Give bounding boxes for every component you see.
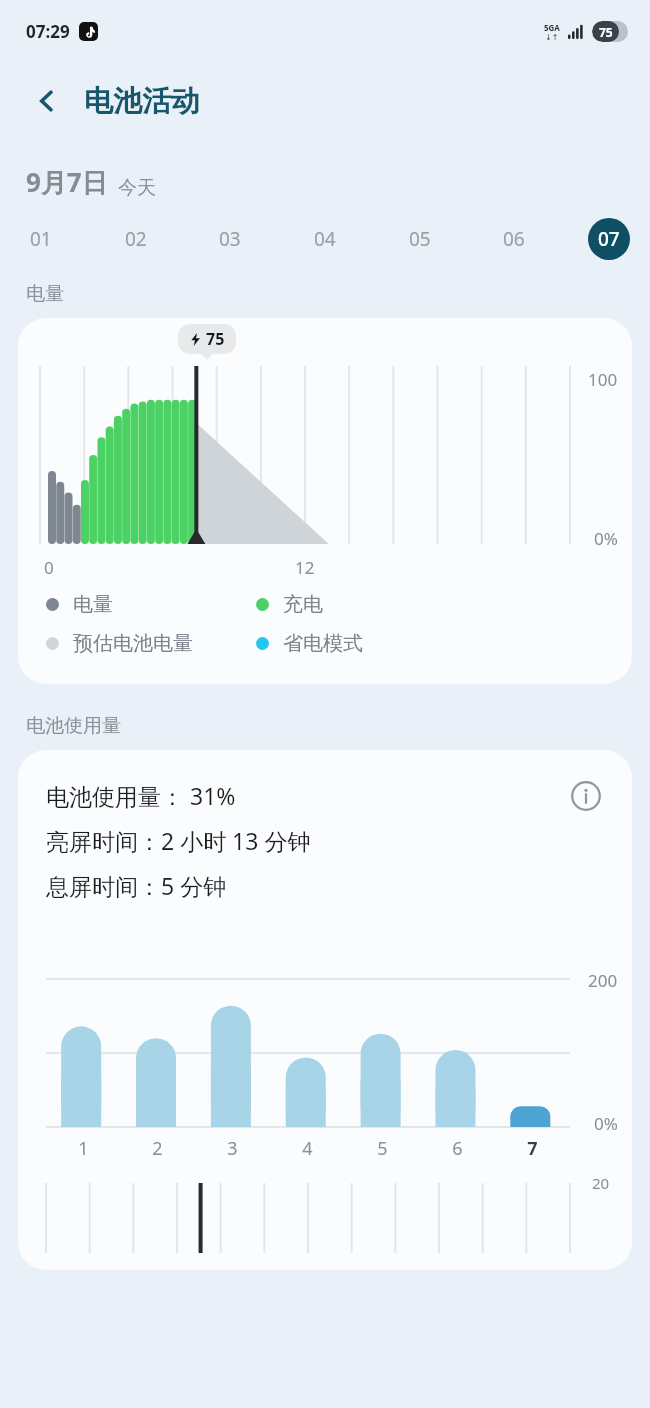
staticText: ↓↑ (545, 33, 559, 42)
staticText: 充电 (283, 592, 323, 617)
button[interactable]: 03 (209, 218, 251, 260)
button[interactable]: Back (22, 76, 72, 126)
staticText: 01 (30, 226, 52, 252)
button[interactable]: 电池使用量： 31% (18, 750, 632, 1270)
staticText: 息屏时间：5 分钟 (46, 870, 227, 901)
staticText: 03 (219, 226, 241, 252)
staticText: 电量 (73, 592, 113, 617)
staticText: 12 (295, 556, 315, 579)
staticText: 07:29 (26, 20, 70, 43)
staticText: 1 (78, 1136, 89, 1161)
button[interactable]: Info (564, 774, 608, 818)
staticText: 2 (152, 1136, 163, 1161)
staticText: 75 (206, 328, 225, 350)
staticText: 07 (598, 226, 620, 252)
staticText: 9月7日 (26, 164, 108, 200)
button[interactable]: 07 (588, 218, 630, 260)
staticText: 3 (227, 1136, 238, 1161)
staticText: 今天 (118, 176, 156, 200)
staticText: 5GA (544, 22, 560, 33)
staticText: 75 (599, 24, 613, 40)
button[interactable]: 01 (20, 218, 62, 260)
staticText: 200 (588, 969, 618, 992)
staticText: 电池活动 (84, 83, 200, 120)
staticText: 电池使用量 (26, 714, 121, 738)
staticText: 电量 (26, 282, 64, 306)
staticText: 0% (594, 1112, 618, 1135)
staticText: 02 (125, 226, 147, 252)
staticText: 4 (302, 1136, 313, 1161)
staticText: 04 (314, 226, 336, 252)
staticText: 0% (594, 527, 618, 550)
staticText: 省电模式 (283, 631, 363, 656)
button[interactable]: 02 (115, 218, 157, 260)
staticText: 预估电池电量 (73, 631, 193, 656)
staticText: 6 (452, 1136, 463, 1161)
staticText: 0 (44, 556, 54, 579)
staticText: 亮屏时间：2 小时 13 分钟 (46, 825, 311, 856)
button[interactable]: 06 (493, 218, 535, 260)
staticText: 5 (377, 1136, 388, 1161)
staticText: 20 (592, 1173, 610, 1193)
staticText: 06 (503, 226, 525, 252)
staticText: 100 (588, 368, 618, 391)
staticText: 7 (527, 1136, 538, 1161)
staticText: 电池使用量： 31% (46, 780, 236, 811)
button[interactable]: 05 (399, 218, 441, 260)
button[interactable]: 04 (304, 218, 346, 260)
button[interactable]: 75 (18, 318, 632, 684)
staticText: 05 (409, 226, 431, 252)
